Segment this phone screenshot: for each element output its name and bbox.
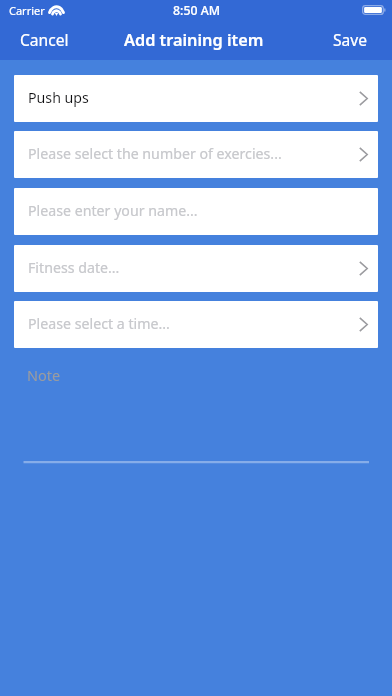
staticText: Carrier xyxy=(9,3,45,18)
staticText: Please select the number of exercies... xyxy=(28,144,282,163)
button[interactable]: Note xyxy=(0,355,392,475)
staticText: Push ups xyxy=(28,88,89,107)
staticText: Note xyxy=(27,365,61,385)
button[interactable]: Push ups xyxy=(14,75,378,122)
staticText: Add training item xyxy=(124,29,264,51)
other: Wi-Fi xyxy=(49,5,64,16)
button[interactable]: Please enter your name... xyxy=(14,188,378,235)
other: Battery full xyxy=(362,5,386,15)
button[interactable]: Fitness date... xyxy=(14,245,378,292)
button[interactable]: Please select the number of exercies... xyxy=(14,131,378,178)
button[interactable]: Save xyxy=(317,21,392,58)
staticText: Please enter your name... xyxy=(28,201,198,220)
staticText: Save xyxy=(333,29,368,50)
staticText: Please select a time... xyxy=(28,314,170,333)
button[interactable]: Cancel xyxy=(0,21,85,58)
button[interactable]: Please select a time... xyxy=(14,301,378,348)
staticText: 8:50 AM xyxy=(173,2,220,19)
staticText: Fitness date... xyxy=(28,258,120,277)
staticText: Cancel xyxy=(20,29,69,50)
